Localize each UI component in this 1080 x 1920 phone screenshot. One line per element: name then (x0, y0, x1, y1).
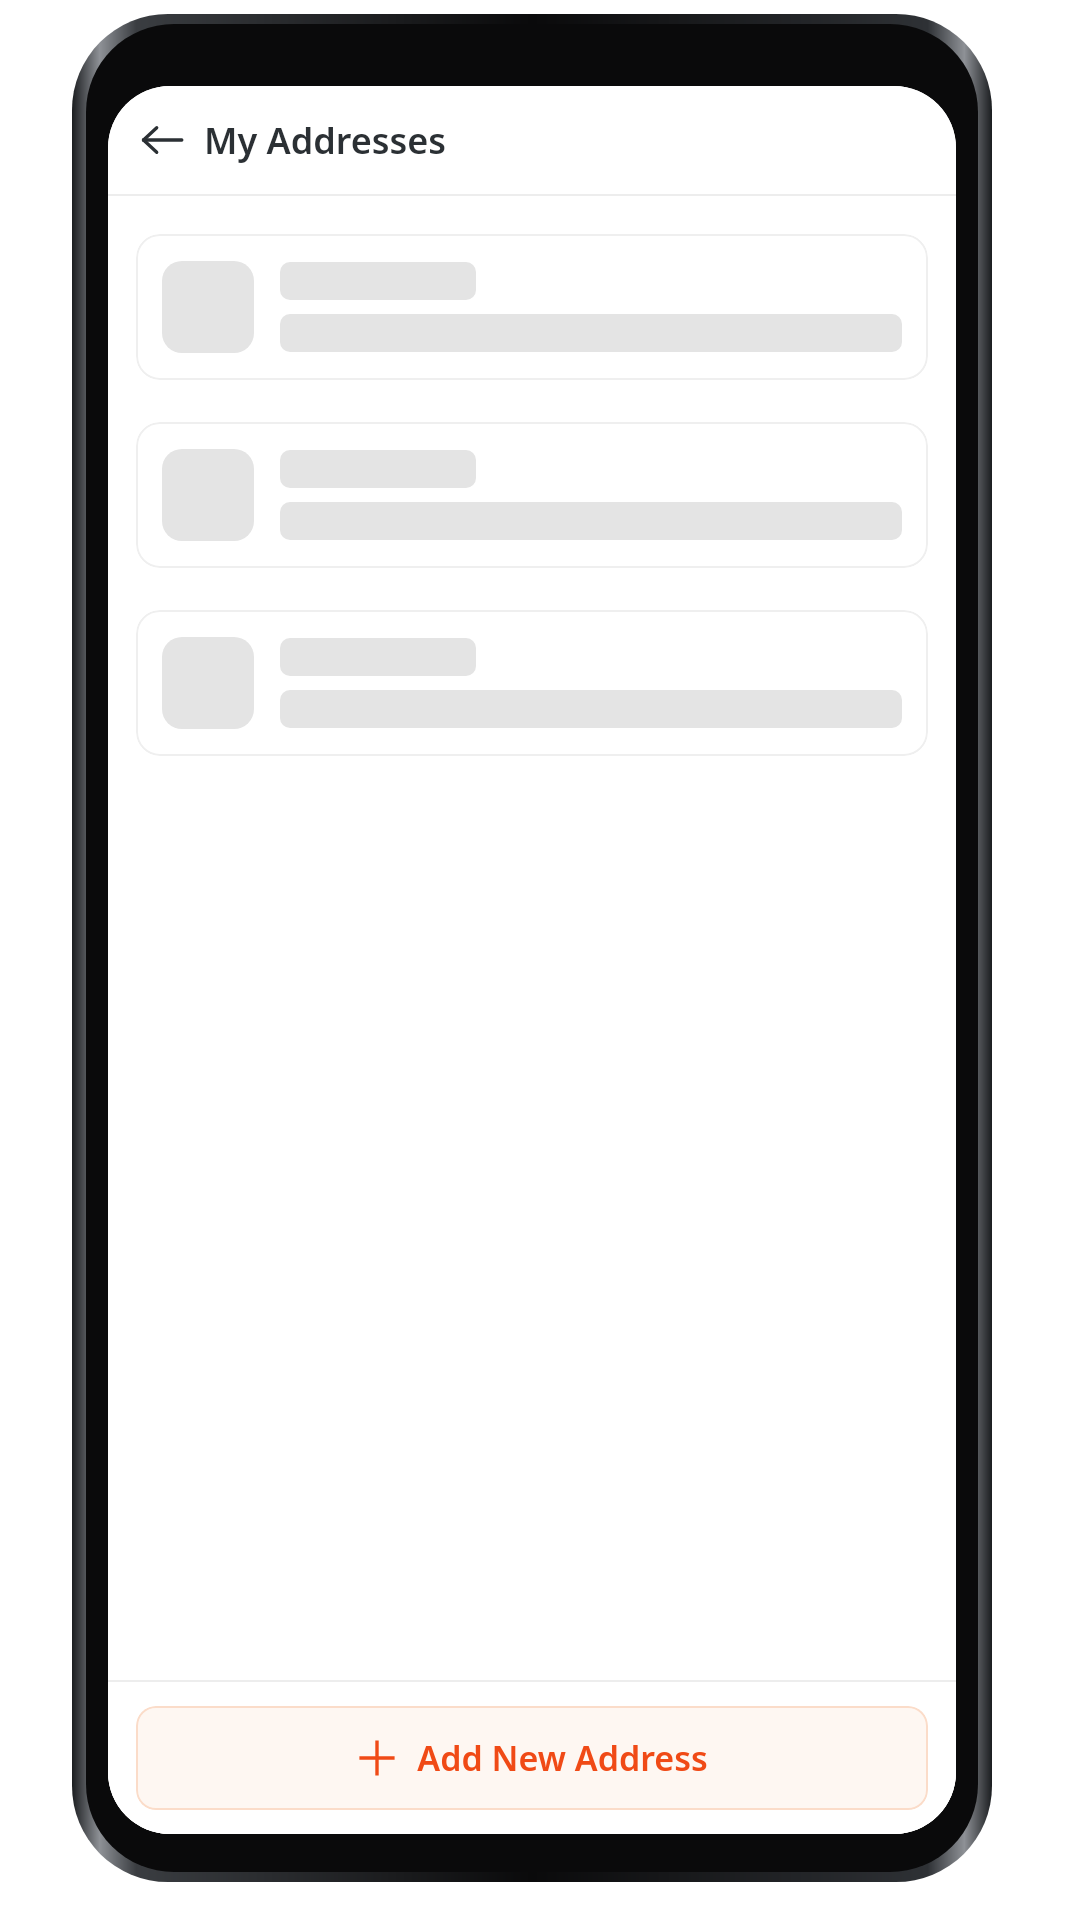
button[interactable] (136, 234, 928, 380)
button[interactable] (136, 422, 928, 568)
button[interactable]: Add New Address (136, 1706, 928, 1810)
button[interactable] (136, 610, 928, 756)
staticText: My Addresses (204, 116, 447, 165)
staticText: Add New Address (417, 1735, 708, 1781)
button[interactable]: Back (132, 110, 192, 170)
